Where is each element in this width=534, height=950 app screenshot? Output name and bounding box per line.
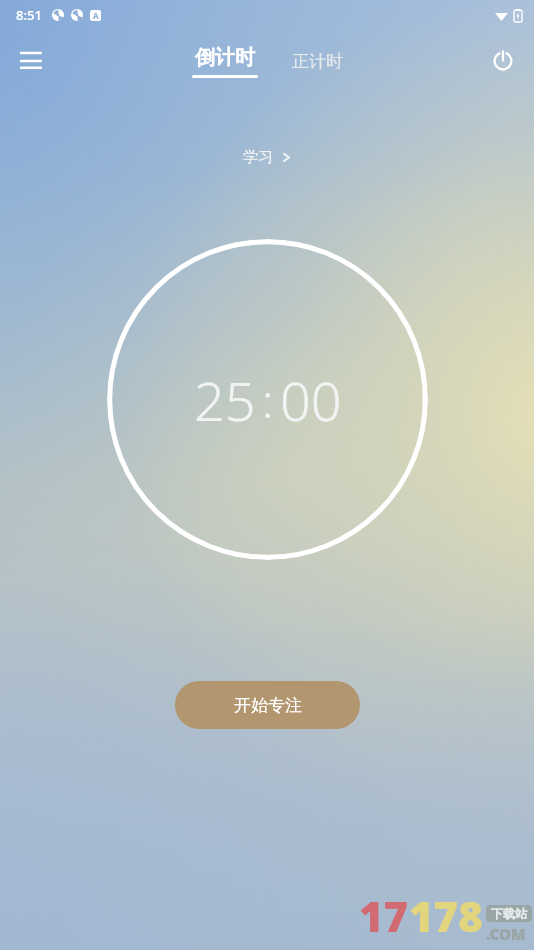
button[interactable]: 25 (107, 239, 428, 560)
staticText: 学习 (243, 148, 273, 167)
staticText: 25 (194, 363, 256, 437)
button[interactable]: 倒计时 (186, 43, 264, 80)
staticText: 正计时 (292, 51, 343, 72)
staticText: 倒计时 (195, 45, 255, 70)
staticText: A (93, 10, 99, 21)
staticText: 开始专注 (234, 695, 302, 716)
staticText: : (262, 369, 274, 432)
staticText: 8:51 (16, 6, 42, 24)
staticText: 178 (409, 887, 483, 944)
staticText: 下载站 (491, 906, 527, 921)
staticText: 17 (359, 887, 409, 944)
button[interactable]: 开始专注 (175, 681, 360, 729)
button[interactable]: 学习 (231, 144, 304, 171)
button[interactable]: Menu (8, 38, 54, 84)
staticText: 00 (280, 363, 342, 437)
button[interactable]: 正计时 (286, 49, 349, 74)
staticText: .COM (486, 924, 526, 944)
button[interactable]: Power (480, 38, 526, 84)
